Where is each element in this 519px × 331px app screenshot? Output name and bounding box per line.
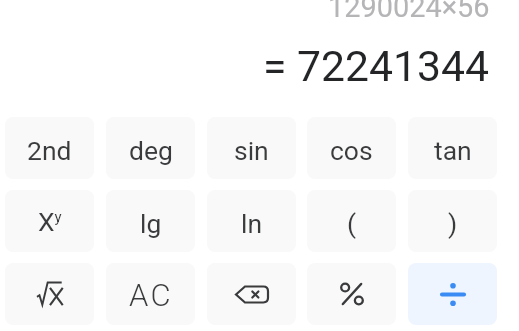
button[interactable]: tan bbox=[408, 117, 497, 179]
staticText: cos bbox=[330, 135, 373, 166]
staticText: Xy bbox=[38, 206, 62, 237]
staticText: ) bbox=[448, 208, 458, 239]
button[interactable]: Square root bbox=[5, 263, 94, 325]
button[interactable]: cos bbox=[307, 117, 396, 179]
button[interactable]: ) bbox=[408, 190, 497, 252]
staticText: = 72241344 bbox=[263, 41, 489, 91]
staticText: lg bbox=[140, 208, 162, 239]
button[interactable]: sin bbox=[207, 117, 296, 179]
staticText: deg bbox=[129, 135, 173, 166]
button[interactable]: Backspace bbox=[207, 263, 296, 325]
staticText: 2nd bbox=[27, 135, 72, 166]
staticText: ( bbox=[347, 208, 357, 239]
staticText: 1290024×56 bbox=[328, 0, 490, 24]
button[interactable]: AC bbox=[106, 263, 195, 325]
button[interactable]: Percent bbox=[307, 263, 396, 325]
staticText: sin bbox=[234, 135, 269, 166]
button[interactable]: deg bbox=[106, 117, 195, 179]
staticText: AC bbox=[129, 277, 173, 313]
button[interactable]: 2nd bbox=[5, 117, 94, 179]
staticText: ln bbox=[241, 208, 263, 239]
button[interactable]: x to the power of y bbox=[5, 190, 94, 252]
button[interactable]: Divide bbox=[408, 263, 497, 325]
button[interactable]: ln bbox=[207, 190, 296, 252]
button[interactable]: ( bbox=[307, 190, 396, 252]
staticText: tan bbox=[434, 135, 472, 166]
button[interactable]: lg bbox=[106, 190, 195, 252]
